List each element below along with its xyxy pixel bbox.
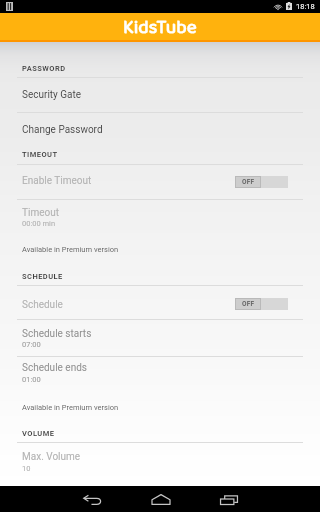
button[interactable] (0, 357, 320, 392)
staticText: Enable Timeout (22, 175, 92, 187)
staticText: KidsTube (123, 13, 197, 40)
staticText: Security Gate (22, 89, 82, 101)
button[interactable]: Toggle off (235, 176, 288, 188)
staticText: Schedule (22, 299, 63, 311)
button[interactable] (0, 320, 320, 355)
button[interactable]: Recent apps (207, 487, 251, 512)
staticText: Change Password (22, 124, 103, 136)
staticText: Available in Premium version (22, 403, 119, 412)
button[interactable] (0, 443, 320, 477)
button[interactable]: Toggle off (235, 298, 288, 310)
staticText: PASSWORD (22, 64, 66, 73)
staticText: 10 (22, 464, 31, 473)
staticText: OFF (242, 300, 255, 308)
staticText: TIMEOUT (22, 150, 58, 159)
staticText: 07:00 (22, 340, 41, 349)
staticText: Max. Volume (22, 451, 81, 463)
staticText: SCHEDULE (22, 272, 63, 281)
staticText: Schedule ends (22, 362, 87, 374)
staticText: Available in Premium version (22, 245, 119, 254)
staticText: VOLUME (22, 429, 55, 438)
staticText: Schedule starts (22, 328, 92, 340)
staticText: OFF (242, 178, 255, 186)
button[interactable] (0, 200, 320, 230)
button[interactable] (0, 113, 320, 145)
button[interactable] (0, 287, 320, 318)
staticText: 00:00 min (22, 219, 56, 228)
staticText: Timeout (22, 207, 59, 219)
button[interactable]: Home (139, 487, 183, 512)
staticText: 18:18 (296, 2, 315, 11)
staticText: 01:00 (22, 375, 41, 384)
button[interactable] (0, 166, 320, 198)
button[interactable] (0, 80, 320, 111)
button[interactable]: Back (70, 487, 114, 512)
